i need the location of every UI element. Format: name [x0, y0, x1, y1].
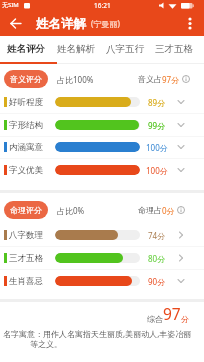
- staticText: 综合: [147, 314, 163, 324]
- staticText: 姓名详解: [36, 16, 86, 32]
- staticText: 姓名评分: [7, 43, 45, 55]
- staticText: 命理占: [138, 205, 162, 215]
- button[interactable]: [0, 11, 30, 36]
- staticText: 三才五格: [155, 43, 193, 55]
- staticText: 89分: [148, 97, 166, 108]
- staticText: 99分: [148, 120, 166, 131]
- staticText: 占比0%: [57, 205, 85, 216]
- staticText: 占比100%: [57, 74, 94, 85]
- button[interactable]: 内涵寓意: [0, 136, 204, 158]
- staticText: 100分: [146, 165, 168, 176]
- staticText: 16:21: [94, 1, 111, 10]
- staticText: 字义优美: [9, 165, 43, 176]
- button[interactable]: 音义评分: [4, 70, 48, 88]
- staticText: 命理评分: [10, 205, 42, 215]
- staticText: 100分: [146, 142, 168, 153]
- button[interactable]: 命理评分: [4, 201, 48, 219]
- staticText: (宁曼丽): [91, 18, 120, 29]
- button[interactable]: 好听程度: [0, 91, 204, 113]
- staticText: 分: [181, 314, 189, 324]
- staticText: 90分: [148, 276, 166, 287]
- staticText: 97: [163, 303, 181, 324]
- button[interactable]: 三才五格: [148, 36, 199, 62]
- staticText: 无SIM: [2, 1, 19, 9]
- staticText: 80分: [148, 253, 166, 264]
- staticText: 三才五格: [9, 253, 43, 264]
- button[interactable]: 生肖喜忌: [0, 270, 204, 292]
- button[interactable]: 八字五行: [99, 36, 150, 62]
- button[interactable]: 姓名解析: [50, 36, 101, 62]
- staticText: 好听程度: [9, 97, 43, 108]
- staticText: 生肖喜忌: [9, 276, 43, 287]
- staticText: 内涵寓意: [9, 142, 43, 153]
- staticText: 音义评分: [10, 74, 42, 84]
- button[interactable]: 字形结构: [0, 114, 204, 136]
- staticText: 名字寓意：用作人名寓指天生丽质,美丽动人,丰姿冶丽: [3, 328, 192, 339]
- staticText: 八字数理: [9, 230, 43, 241]
- button[interactable]: 字义优美: [0, 159, 204, 181]
- staticText: 字形结构: [9, 120, 43, 131]
- staticText: 97分: [162, 74, 180, 85]
- staticText: 74分: [148, 230, 166, 241]
- button[interactable]: 八字数理: [0, 224, 204, 246]
- staticText: 八字五行: [106, 43, 144, 55]
- staticText: 音义占: [138, 74, 162, 84]
- staticText: 0分: [162, 205, 175, 216]
- staticText: 等之义。: [30, 339, 62, 349]
- staticText: 姓名解析: [57, 43, 95, 55]
- button[interactable]: 姓名评分: [0, 36, 51, 62]
- button[interactable]: 三才五格: [0, 247, 204, 269]
- button[interactable]: [180, 11, 204, 36]
